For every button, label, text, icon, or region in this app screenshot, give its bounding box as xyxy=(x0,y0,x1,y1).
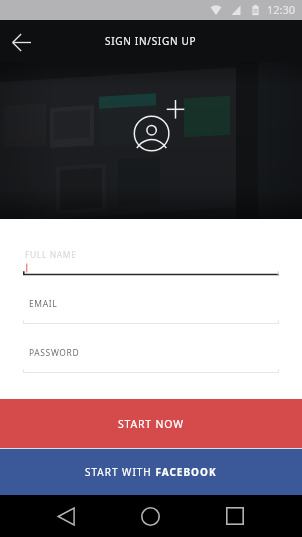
staticText: FULL NAME xyxy=(25,249,77,261)
button[interactable]: Home xyxy=(130,495,170,537)
button[interactable]: FULL NAME xyxy=(0,249,302,298)
button[interactable]: START WITH FACEBOOK xyxy=(0,449,302,495)
button[interactable]: PASSWORD xyxy=(0,347,302,396)
staticText: SIGN IN/SIGN UP xyxy=(105,34,197,48)
staticText: START WITH FACEBOOK xyxy=(85,465,217,479)
button[interactable]: EMAIL xyxy=(0,298,302,347)
staticText: START NOW xyxy=(118,417,184,431)
button[interactable]: START NOW xyxy=(0,399,302,448)
button[interactable]: Back xyxy=(46,495,86,537)
staticText: EMAIL xyxy=(29,298,58,310)
staticText: 12:30 xyxy=(267,2,296,17)
staticText: PASSWORD xyxy=(29,347,80,359)
button[interactable]: Back xyxy=(0,20,41,62)
button[interactable]: Recent apps xyxy=(215,495,255,537)
